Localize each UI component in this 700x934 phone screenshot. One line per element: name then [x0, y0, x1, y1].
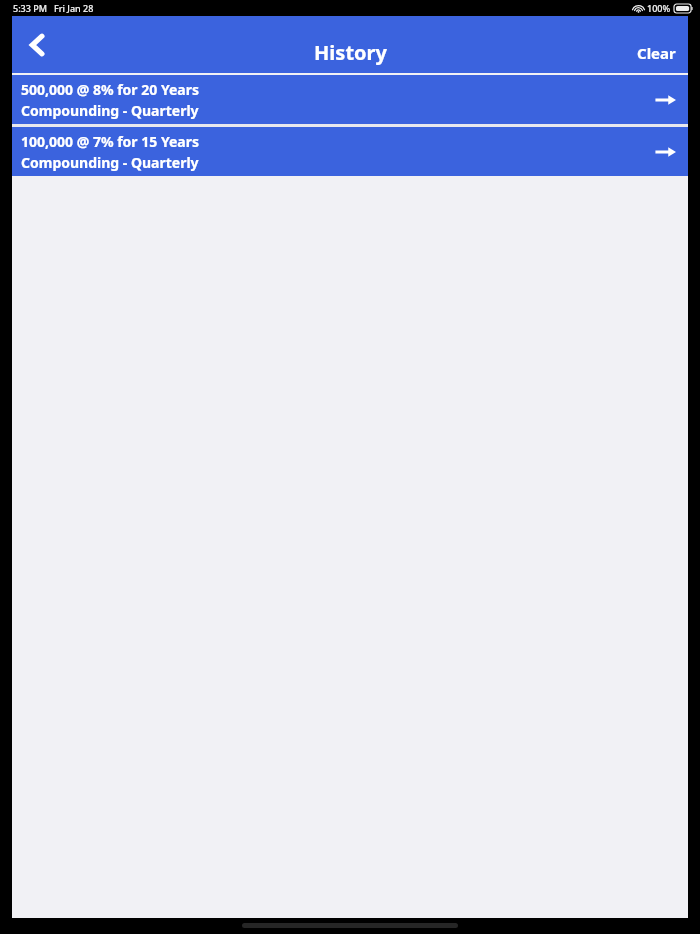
button[interactable]: Back	[14, 23, 58, 67]
staticText: 5:33 PM	[13, 2, 47, 14]
button[interactable]: Clear	[631, 39, 682, 67]
staticText: Fri Jan 28	[54, 2, 94, 14]
staticText: 500,000 @ 8% for 20 Years	[21, 80, 199, 99]
staticText: History	[314, 39, 387, 66]
other: Open details	[649, 84, 681, 116]
staticText: 100,000 @ 7% for 15 Years	[21, 132, 199, 151]
other: Open details	[649, 136, 681, 168]
staticText: 100%	[647, 2, 671, 14]
staticText: Compounding - Quarterly	[21, 101, 199, 120]
button[interactable]: 100,000 @ 7% for 15 Years	[12, 127, 688, 176]
staticText: Compounding - Quarterly	[21, 153, 199, 172]
staticText: Clear	[637, 43, 676, 63]
button[interactable]: 500,000 @ 8% for 20 Years	[12, 75, 688, 124]
